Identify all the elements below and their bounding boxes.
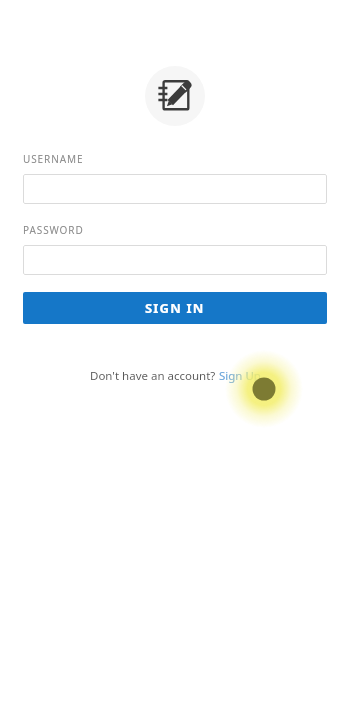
staticText: SIGN IN bbox=[145, 299, 205, 317]
staticText: USERNAME bbox=[23, 152, 84, 166]
button[interactable]: Password field bbox=[23, 245, 327, 275]
button[interactable]: Sign Up bbox=[219, 368, 261, 384]
staticText: Don't have an account? bbox=[90, 368, 219, 384]
other: App logo bbox=[145, 66, 205, 126]
staticText: PASSWORD bbox=[23, 223, 84, 237]
button[interactable]: Username field bbox=[23, 174, 327, 204]
staticText: Sign Up bbox=[219, 368, 261, 384]
button[interactable]: SIGN IN bbox=[23, 292, 327, 324]
